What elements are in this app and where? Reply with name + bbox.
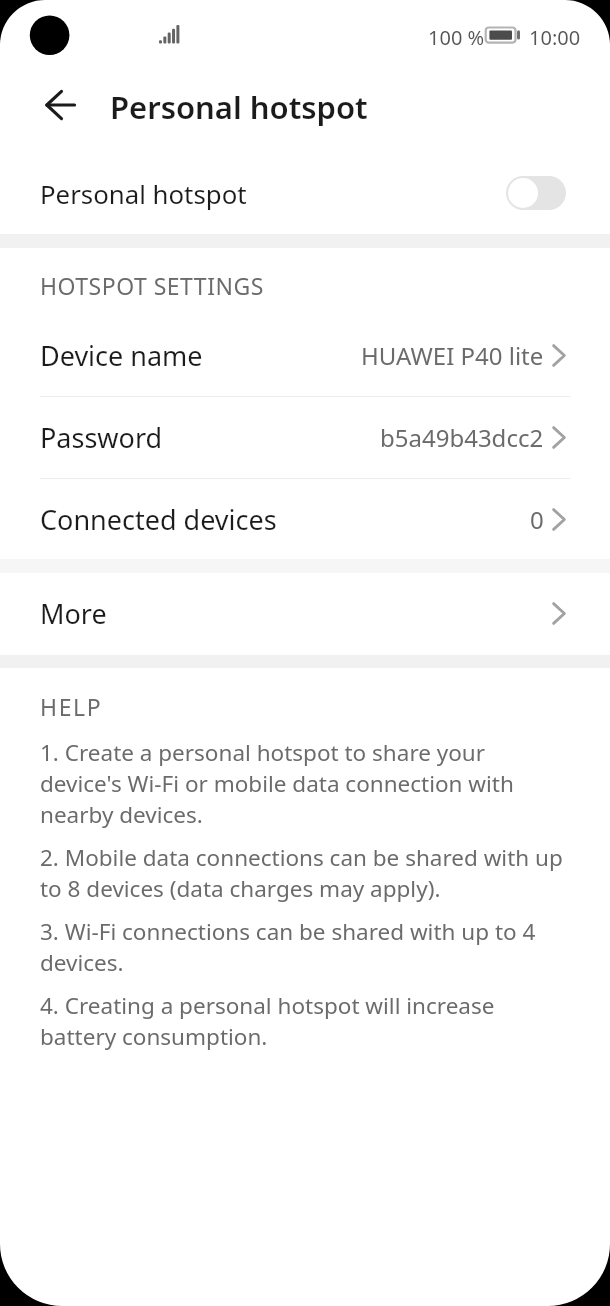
staticText: HUAWEI P40 lite [361,339,544,372]
staticText: 2. Mobile data connections can be shared… [40,842,564,904]
staticText: 10:00 [529,24,581,51]
staticText: Device name [40,337,203,374]
button[interactable]: Device name [0,315,610,396]
staticText: 4. Creating a personal hotspot will incr… [40,990,564,1052]
staticText: Connected devices [40,501,277,538]
button[interactable]: More [0,573,610,654]
staticText: b5a49b43dcc2 [380,421,544,454]
staticText: 1. Create a personal hotspot to share yo… [40,737,564,830]
staticText: HELP [40,691,103,722]
staticText: Password [40,419,163,456]
staticText: HOTSPOT SETTINGS [40,270,264,301]
button[interactable]: Back [36,79,88,131]
staticText: 3. Wi-Fi connections can be shared with … [40,916,564,978]
staticText: 100 % [428,24,485,51]
button[interactable]: Password [0,397,610,478]
staticText: Personal hotspot [40,176,247,211]
button[interactable]: Connected devices [0,479,610,560]
button[interactable]: Personal hotspot [0,151,610,235]
staticText: 0 [530,503,544,536]
button[interactable]: Personal hotspot toggle [506,176,566,210]
staticText: Personal hotspot [110,86,368,128]
staticText: More [40,595,107,632]
